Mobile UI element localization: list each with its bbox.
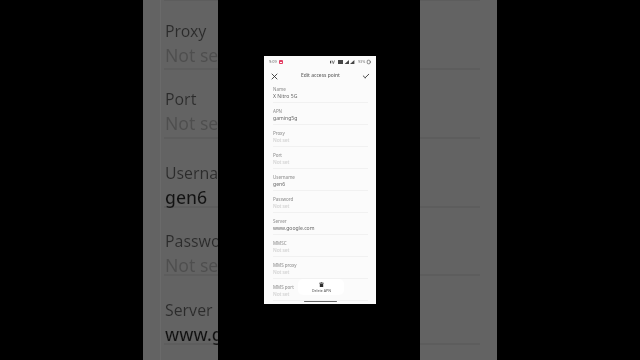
staticText: MMSC (273, 240, 287, 246)
staticText: Server (165, 299, 213, 321)
staticText: Not set (165, 111, 225, 135)
staticText: Not set (165, 43, 225, 67)
staticText: Edit access point (301, 72, 340, 79)
button[interactable]: Proxy (264, 128, 376, 150)
staticText: Proxy (165, 20, 207, 42)
staticText: 9:09 (269, 59, 277, 64)
button[interactable]: MMS port (264, 282, 376, 304)
staticText: Not set (165, 253, 225, 277)
staticText: gaming5g (273, 115, 298, 122)
staticText: Proxy (273, 130, 285, 136)
staticText: Not set (273, 159, 290, 166)
staticText: Not set (273, 137, 290, 144)
button[interactable]: Delete APN (298, 279, 344, 295)
staticText: 93% (358, 59, 366, 64)
staticText: gen6 (165, 185, 208, 209)
staticText: Delete APN (312, 288, 331, 293)
staticText: MMS proxy (273, 262, 297, 268)
button[interactable]: Password (264, 194, 376, 216)
staticText: Server (273, 218, 287, 224)
button[interactable]: Username (264, 172, 376, 194)
staticText: Not set (273, 247, 290, 254)
button[interactable]: Save (360, 70, 372, 82)
button[interactable]: Server (264, 216, 376, 238)
staticText: APN (273, 108, 283, 114)
staticText: www.google.com (165, 322, 311, 346)
staticText: Not set (273, 269, 290, 276)
staticText: Port (165, 88, 197, 110)
staticText: Port (273, 152, 282, 158)
staticText: Not set (273, 291, 290, 298)
staticText: Username (165, 162, 242, 184)
button[interactable]: MMSC (264, 238, 376, 260)
button[interactable]: Name (264, 84, 376, 106)
staticText: Name (273, 86, 286, 92)
staticText: Username (273, 174, 295, 180)
staticText: gen6 (273, 181, 286, 188)
staticText: MMS port (273, 284, 294, 290)
button[interactable]: Close (268, 70, 280, 82)
staticText: www.google.com (273, 225, 315, 232)
staticText: X Nitro 5G (273, 93, 298, 100)
button[interactable]: Port (264, 150, 376, 172)
staticText: Password (165, 230, 237, 252)
button[interactable]: MMS proxy (264, 260, 376, 282)
staticText: Not set (273, 203, 290, 210)
button[interactable]: APN (264, 106, 376, 128)
staticText: Password (273, 196, 294, 202)
